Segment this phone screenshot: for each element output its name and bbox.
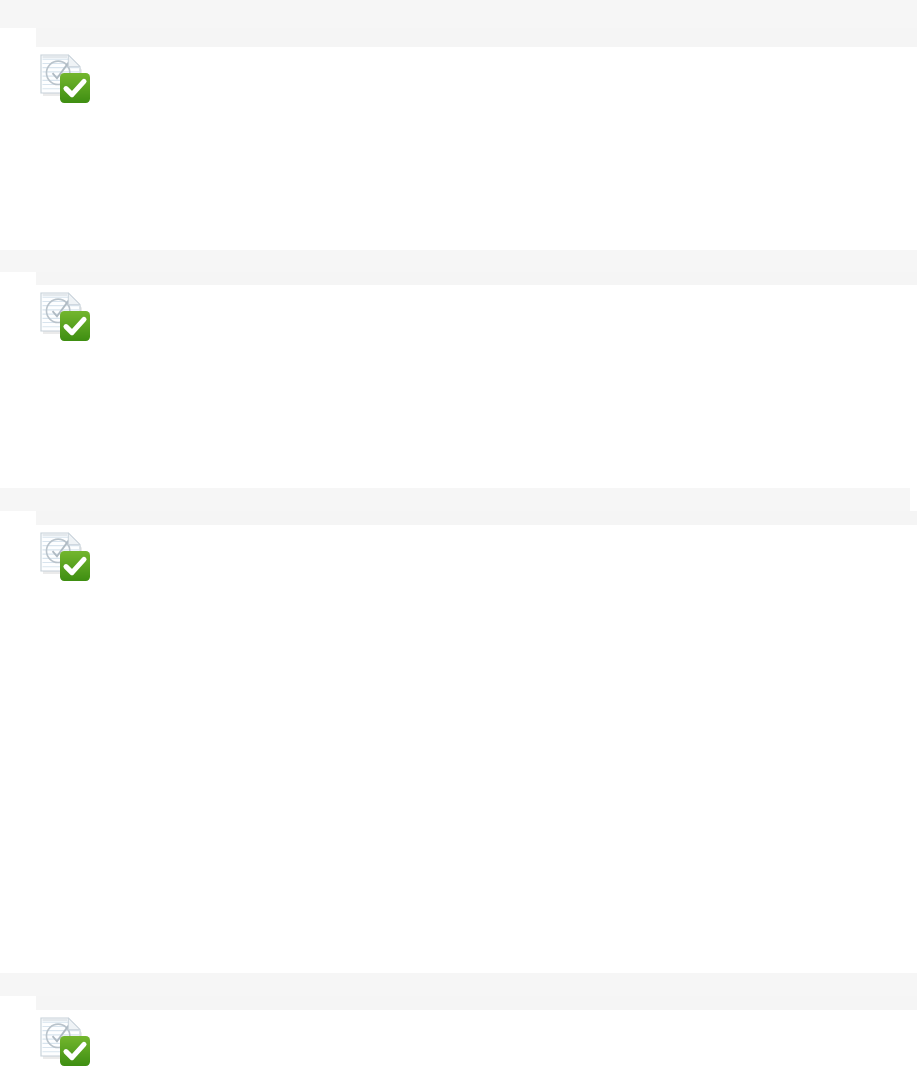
button[interactable]: Image placeholder	[40, 53, 90, 103]
button[interactable]: Image placeholder	[40, 291, 90, 341]
button[interactable]: Image placeholder	[40, 531, 90, 581]
button[interactable]: Image placeholder	[40, 1016, 90, 1066]
